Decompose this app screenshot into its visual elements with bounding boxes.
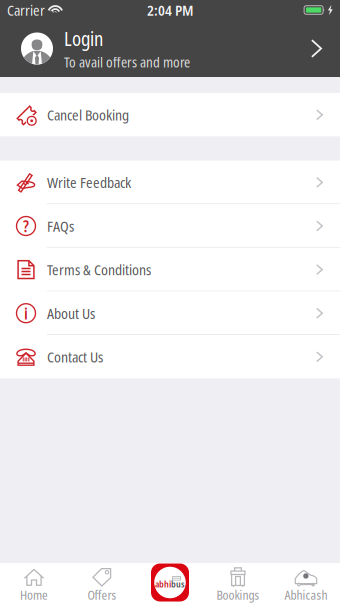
button[interactable]: Cancel Booking	[0, 93, 340, 137]
staticText: Abhicash	[284, 586, 327, 603]
button[interactable]: Login	[0, 20, 340, 77]
button[interactable]: Terms & Conditions	[0, 248, 340, 291]
button[interactable]: i	[0, 291, 340, 335]
staticText: bus	[171, 578, 185, 590]
staticText: Write Feedback	[47, 172, 131, 192]
button[interactable]: abhibus Home	[136, 562, 204, 604]
button[interactable]: Bookings	[204, 563, 272, 604]
staticText: Offers	[87, 586, 116, 603]
staticText: Home	[20, 586, 48, 603]
staticText: Carrier	[7, 0, 45, 20]
staticText: Bookings	[216, 586, 259, 603]
staticText: Terms & Conditions	[47, 260, 151, 280]
button[interactable]: Home	[0, 563, 68, 604]
staticText: About Us	[47, 303, 95, 323]
button[interactable]: Write Feedback	[0, 161, 340, 204]
staticText: Login	[64, 25, 103, 52]
button[interactable]: Contact Us	[0, 335, 340, 379]
button[interactable]: Abhicash	[272, 563, 340, 604]
staticText: Contact Us	[47, 347, 103, 367]
staticText: ?	[23, 215, 29, 237]
staticText: To avail offers and more	[64, 53, 190, 72]
staticText: abhi	[155, 578, 171, 590]
button[interactable]: ?	[0, 204, 340, 248]
staticText: i	[24, 302, 28, 324]
staticText: FAQs	[47, 216, 74, 236]
button[interactable]: Offers	[68, 563, 136, 604]
staticText: 2:04 PM	[147, 0, 193, 20]
staticText: Cancel Booking	[47, 105, 129, 125]
